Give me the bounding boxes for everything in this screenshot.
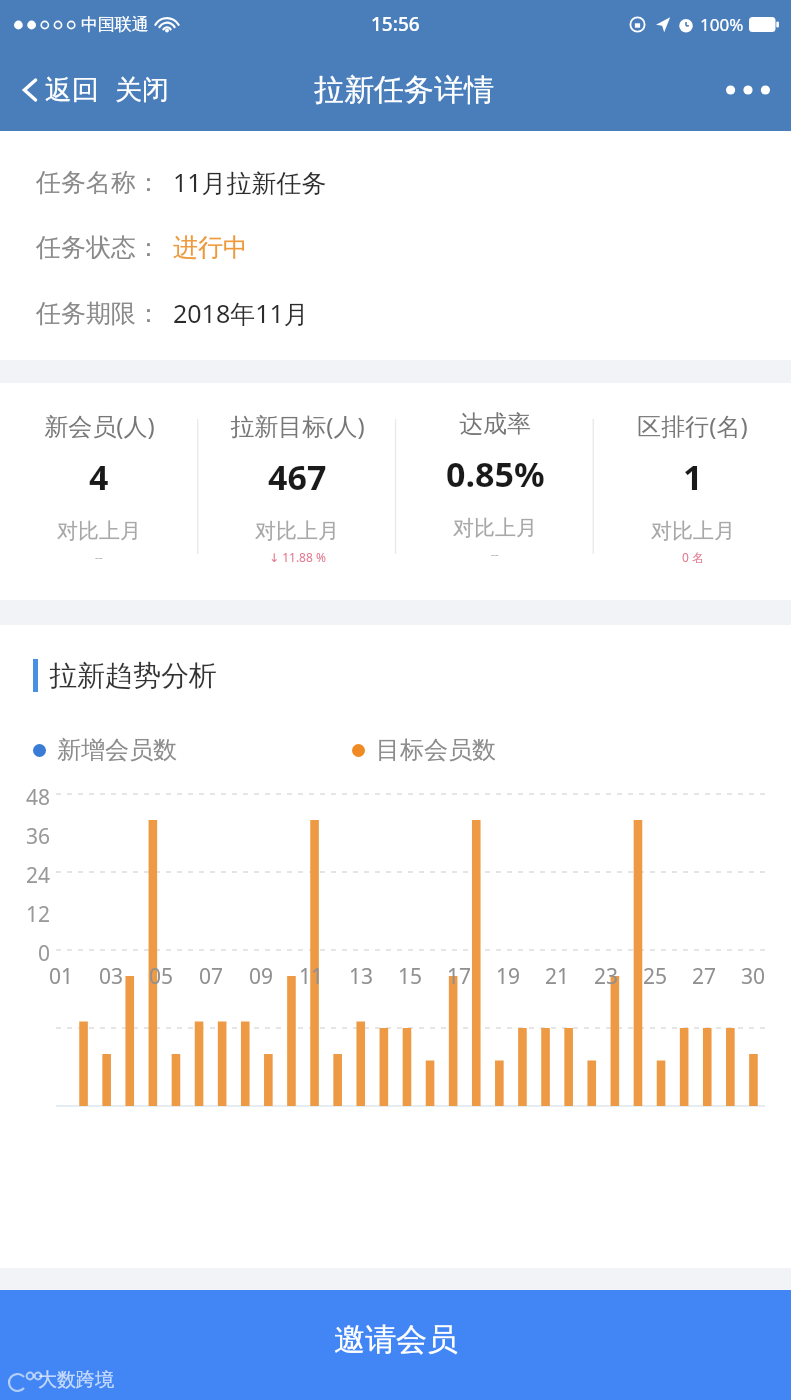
staticText: 邀请会员 [334, 1320, 458, 1359]
staticText: 05 [149, 962, 174, 991]
staticText: ↓ 11.88 % [269, 549, 326, 565]
staticText: 对比上月 [453, 515, 537, 541]
staticText: 4 [89, 454, 109, 500]
staticText: 01 [49, 962, 74, 991]
button[interactable]: More options [705, 67, 791, 113]
staticText: 目标会员数 [376, 735, 496, 765]
staticText: 27 [692, 962, 717, 991]
button[interactable]: 关闭 [111, 67, 173, 113]
staticText: 2018年11月 [173, 296, 309, 330]
staticText: 19 [496, 962, 521, 991]
staticText: 对比上月 [651, 518, 735, 544]
staticText: 0 名 [682, 549, 704, 565]
staticText: 11 [299, 962, 324, 991]
staticText: -- [95, 549, 103, 565]
staticText: 21 [545, 962, 570, 991]
staticText: 对比上月 [255, 518, 339, 544]
staticText: 12 [10, 900, 50, 929]
staticText: 新会员(人) [44, 409, 155, 442]
staticText: 25 [643, 962, 668, 991]
staticText: 0.85% [446, 451, 545, 497]
button[interactable]: 返回 [16, 67, 103, 113]
staticText: 任务期限： [36, 298, 161, 329]
staticText: 拉新趋势分析 [49, 658, 217, 693]
staticText: 拉新目标(人) [230, 409, 365, 442]
staticText: 36 [10, 822, 50, 851]
staticText: 07 [199, 962, 224, 991]
staticText: 大数跨境 [38, 1368, 114, 1392]
staticText: 达成率 [459, 409, 531, 439]
staticText: 区排行(名) [637, 409, 748, 442]
staticText: 返回 [45, 73, 99, 107]
staticText: 13 [349, 962, 374, 991]
staticText: 09 [249, 962, 274, 991]
staticText: 新增会员数 [57, 735, 177, 765]
staticText: 11月拉新任务 [173, 165, 327, 199]
staticText: 任务状态： [36, 232, 161, 263]
staticText: 48 [10, 783, 50, 812]
staticText: 467 [268, 454, 327, 500]
staticText: 15:56 [371, 11, 420, 37]
staticText: 03 [99, 962, 124, 991]
staticText: 30 [741, 962, 766, 991]
staticText: 24 [10, 861, 50, 890]
staticText: 关闭 [115, 73, 169, 107]
staticText: 进行中 [173, 232, 248, 263]
staticText: 100% [700, 13, 744, 36]
staticText: 拉新任务详情 [314, 71, 494, 109]
button[interactable]: 邀请会员 [0, 1290, 791, 1400]
staticText: -- [491, 546, 499, 562]
staticText: 1 [683, 454, 703, 500]
staticText: 任务名称： [36, 167, 161, 198]
staticText: 中国联通 [81, 14, 149, 35]
staticText: 0 [10, 939, 50, 968]
staticText: 23 [594, 962, 619, 991]
staticText: 17 [447, 962, 472, 991]
staticText: 对比上月 [57, 518, 141, 544]
staticText: 15 [398, 962, 423, 991]
